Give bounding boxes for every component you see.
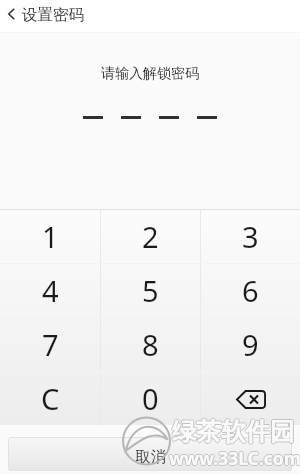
staticText: 绿茶软件园 xyxy=(171,416,294,447)
button[interactable]: 0 xyxy=(101,372,200,425)
other: Backspace xyxy=(234,387,268,411)
staticText: 7 xyxy=(42,325,59,364)
button[interactable]: 6 xyxy=(201,264,300,317)
staticText: 绿茶软件园 xyxy=(172,415,295,446)
staticText: www.33LC.com xyxy=(168,446,300,470)
staticText: 8 xyxy=(142,325,159,364)
staticText: 1 xyxy=(42,217,59,256)
staticText: C xyxy=(41,379,60,418)
staticText: 取消 xyxy=(135,447,166,467)
button[interactable]: 1 xyxy=(0,209,100,263)
staticText: 3 xyxy=(242,217,259,256)
staticText: 0 xyxy=(142,379,159,418)
button[interactable]: C xyxy=(0,372,100,425)
staticText: 5 xyxy=(142,271,159,310)
staticText: 4 xyxy=(42,271,59,310)
button[interactable]: 5 xyxy=(101,264,200,317)
staticText: www.33LC.com xyxy=(169,447,300,471)
button[interactable]: 9 xyxy=(201,318,300,371)
staticText: 绿茶软件园 xyxy=(172,417,295,448)
staticText: 6 xyxy=(242,271,259,310)
button[interactable]: Back xyxy=(0,0,22,32)
button[interactable]: Backspace xyxy=(201,372,300,425)
button[interactable]: 取消 xyxy=(8,437,292,471)
staticText: www.33LC.com xyxy=(169,445,300,469)
staticText: 请输入解锁密码 xyxy=(101,65,199,83)
button[interactable]: 4 xyxy=(0,264,100,317)
staticText: 绿茶软件园 xyxy=(173,416,296,447)
button[interactable]: 8 xyxy=(101,318,200,371)
staticText: www.33LC.com xyxy=(170,446,300,470)
staticText: 设置密码 xyxy=(22,5,84,25)
staticText: 绿茶软件园 xyxy=(172,416,295,447)
button[interactable]: 3 xyxy=(201,209,300,263)
staticText: www.33LC.com xyxy=(169,446,300,470)
staticText: 9 xyxy=(242,325,259,364)
button[interactable]: 2 xyxy=(101,209,200,263)
staticText: 2 xyxy=(142,217,159,256)
button[interactable]: 7 xyxy=(0,318,100,371)
